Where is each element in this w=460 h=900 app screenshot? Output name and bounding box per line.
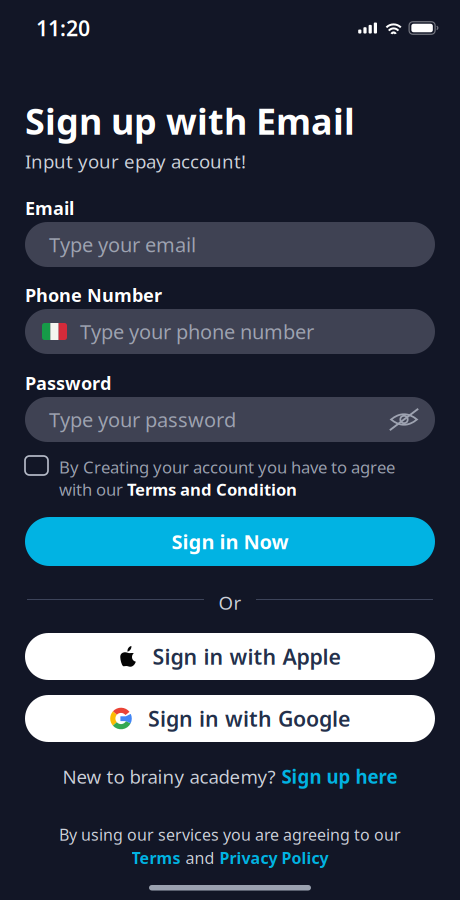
button[interactable]: Type your phone number [25,309,435,354]
staticText: Sign in with Apple [152,642,340,671]
staticText: Terms [131,847,180,868]
staticText: Type your email [49,231,196,258]
staticText: Sign in with Google [148,704,350,733]
staticText: and [185,847,214,868]
button[interactable]: Sign in with Apple [25,633,435,680]
button[interactable]: Sign up here [281,764,397,789]
button[interactable]: Sign in with Google [25,695,435,742]
button[interactable]: Privacy Policy [219,847,328,868]
staticText: Terms and Condition [127,478,297,500]
staticText: By using our services you are agreeing t… [59,824,401,845]
button[interactable]: Sign in Now [25,517,435,566]
staticText: Or [218,590,241,615]
staticText: Sign in Now [171,528,288,555]
staticText: Input your epay account! [25,149,246,174]
staticText: with our [59,478,123,500]
staticText: Privacy Policy [219,847,328,868]
staticText: Phone Number [25,283,162,307]
button[interactable]: Terms [131,847,180,868]
button[interactable]: Type your email [25,222,435,267]
staticText: 11:20 [36,14,90,42]
button[interactable]: Type your password [25,397,435,442]
staticText: Password [25,371,111,395]
staticText: Type your password [49,406,236,433]
staticText: By Creating your account you have to agr… [59,456,395,478]
staticText: Type your phone number [80,318,314,345]
staticText: Sign up with Email [25,97,355,145]
staticText: Email [25,196,74,220]
staticText: Sign up here [281,764,397,789]
staticText: New to brainy academy? [62,764,275,789]
button[interactable]: Agree to terms [25,456,48,475]
